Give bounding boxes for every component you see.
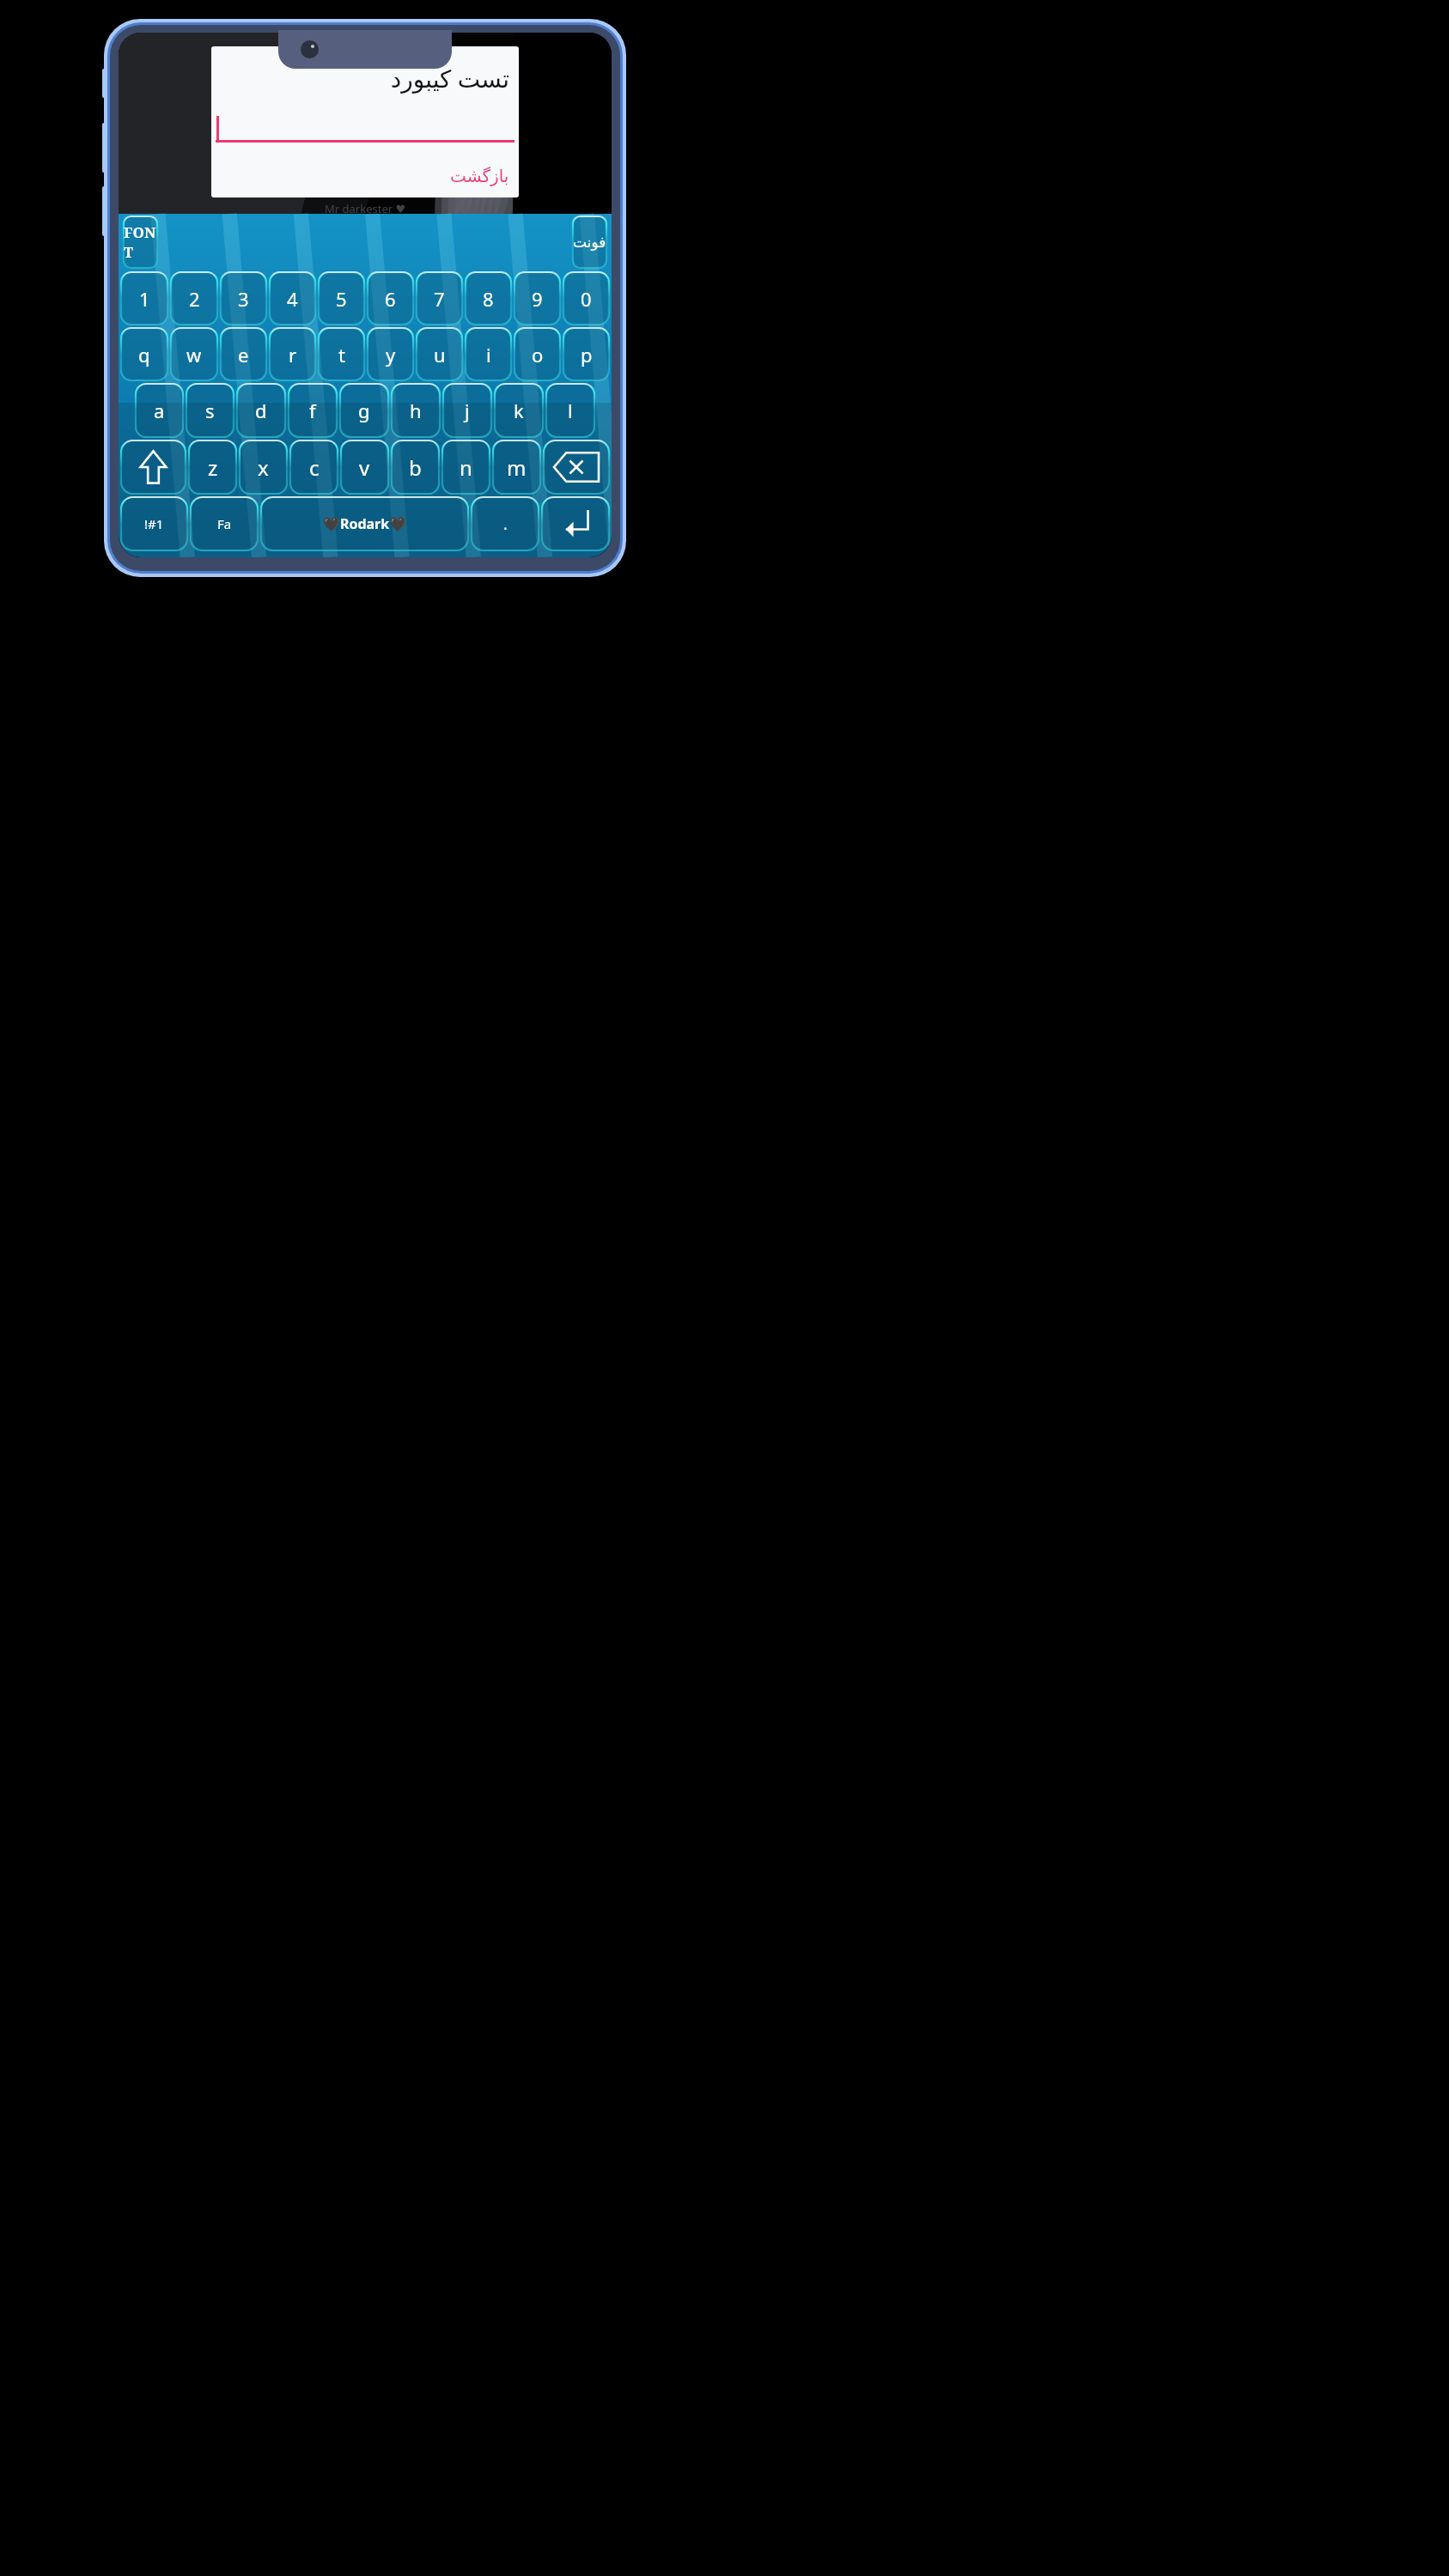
staticText: 2: [189, 286, 200, 312]
staticText: s: [205, 398, 215, 423]
staticText: n: [460, 453, 472, 482]
staticText: e: [238, 342, 249, 368]
button[interactable]: Fa: [191, 497, 258, 550]
staticText: a: [154, 398, 165, 423]
staticText: t: [338, 342, 345, 368]
button[interactable]: 4: [270, 272, 315, 325]
button[interactable]: [216, 113, 514, 143]
button[interactable]: d: [237, 384, 285, 437]
button[interactable]: i: [466, 328, 511, 380]
staticText: 4: [287, 286, 298, 312]
staticText: تست کیبورد: [216, 62, 509, 94]
button[interactable]: 3: [221, 272, 266, 325]
button[interactable]: o: [514, 328, 560, 380]
staticText: c: [309, 453, 320, 482]
staticText: 1: [139, 286, 150, 312]
staticText: FONT: [124, 222, 157, 262]
staticText: فونت: [573, 234, 606, 251]
staticText: 0: [581, 286, 592, 312]
staticText: i: [486, 342, 491, 368]
button[interactable]: 2: [171, 272, 217, 325]
staticText: h: [410, 398, 422, 423]
staticText: 9: [532, 286, 543, 312]
button[interactable]: q: [121, 328, 167, 380]
staticText: y: [386, 342, 396, 368]
button[interactable]: v: [341, 440, 388, 494]
button[interactable]: c: [290, 440, 338, 494]
staticText: o: [532, 342, 544, 368]
staticText: p: [581, 342, 593, 368]
button[interactable]: .: [472, 497, 539, 550]
staticText: 7: [434, 286, 445, 312]
button[interactable]: e: [221, 328, 266, 380]
staticText: l: [568, 398, 573, 423]
staticText: m: [507, 453, 527, 482]
button[interactable]: x: [240, 440, 287, 494]
staticText: g: [358, 398, 370, 423]
button[interactable]: m: [493, 440, 540, 494]
staticText: !#1: [144, 515, 164, 532]
staticText: x: [258, 453, 269, 482]
button[interactable]: بازگشت: [450, 166, 514, 197]
staticText: 5: [336, 286, 347, 312]
staticText: k: [514, 398, 524, 423]
staticText: .: [503, 513, 508, 535]
staticText: v: [359, 453, 370, 482]
button[interactable]: s: [186, 384, 234, 437]
button[interactable]: 0: [563, 272, 609, 325]
staticText: r: [289, 342, 297, 368]
button[interactable]: u: [417, 328, 462, 380]
staticText: 3: [238, 286, 249, 312]
button[interactable]: k: [495, 384, 543, 437]
button[interactable]: 8: [466, 272, 511, 325]
button[interactable]: r: [270, 328, 315, 380]
button[interactable]: 🖤Rodark🖤: [261, 497, 468, 550]
staticText: Fa: [217, 515, 232, 532]
button[interactable]: FONT: [124, 216, 157, 268]
button[interactable]: a: [136, 384, 183, 437]
button[interactable]: 1: [121, 272, 167, 325]
staticText: بازگشت: [450, 166, 509, 185]
button[interactable]: 7: [417, 272, 462, 325]
staticText: j: [465, 398, 470, 423]
staticText: f: [309, 398, 316, 423]
staticText: q: [138, 342, 150, 368]
staticText: b: [409, 453, 422, 482]
staticText: 🖤Rodark🖤: [323, 514, 407, 533]
staticText: w: [186, 342, 202, 368]
button[interactable]: 6: [368, 272, 413, 325]
button[interactable]: l: [546, 384, 594, 437]
staticText: z: [208, 453, 218, 482]
button[interactable]: n: [442, 440, 490, 494]
button[interactable]: g: [340, 384, 388, 437]
button[interactable]: z: [189, 440, 236, 494]
button[interactable]: !#1: [121, 497, 187, 550]
staticText: 6: [385, 286, 396, 312]
button[interactable]: b: [392, 440, 439, 494]
button[interactable]: t: [319, 328, 364, 380]
button[interactable]: Shift: [121, 440, 186, 494]
staticText: Mr darkester ♥: [325, 201, 406, 214]
button[interactable]: f: [289, 384, 337, 437]
staticText: d: [255, 398, 267, 423]
button[interactable]: Backspace: [544, 440, 609, 494]
staticText: 8: [483, 286, 494, 312]
button[interactable]: j: [443, 384, 491, 437]
staticText: u: [434, 342, 446, 368]
button[interactable]: 5: [319, 272, 364, 325]
button[interactable]: p: [563, 328, 609, 380]
button[interactable]: h: [392, 384, 440, 437]
button[interactable]: 9: [514, 272, 560, 325]
button[interactable]: w: [171, 328, 217, 380]
button[interactable]: Enter: [542, 497, 609, 550]
button[interactable]: فونت: [573, 216, 606, 268]
button[interactable]: y: [368, 328, 413, 380]
